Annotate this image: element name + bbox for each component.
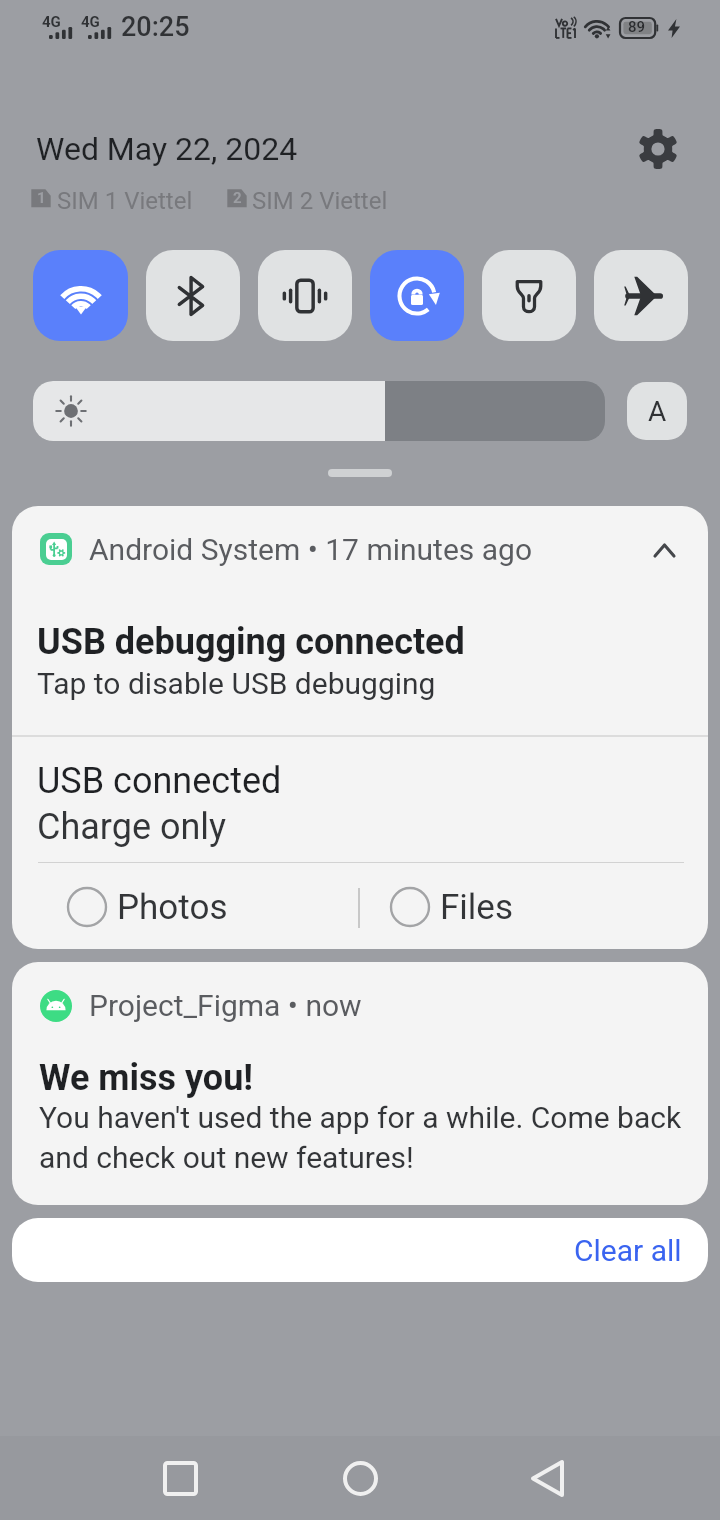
button[interactable]: Photos (65, 885, 228, 929)
button[interactable]: Wi-Fi (33, 250, 128, 341)
button[interactable]: Collapse notification (640, 526, 688, 574)
button[interactable]: Auto-rotate lock (370, 250, 464, 341)
staticText: A (648, 395, 667, 428)
staticText: 2 (233, 189, 242, 207)
staticText: You haven't used the app for a while. Co… (39, 1100, 682, 1175)
staticText: We miss you! (39, 1057, 254, 1099)
staticText: SIM 1 Viettel (57, 187, 193, 215)
staticText: SIM 2 Viettel (252, 187, 388, 215)
staticText: 20:25 (121, 11, 190, 43)
staticText: USB connected (37, 760, 282, 802)
staticText: Wed May 22, 2024 (36, 130, 298, 168)
button[interactable]: Brightness (33, 381, 605, 441)
staticText: Clear all (574, 1233, 682, 1268)
staticText: Project_Figma • now (89, 988, 362, 1023)
staticText: Files (440, 887, 513, 928)
button[interactable]: Flashlight (482, 250, 576, 341)
button[interactable]: Auto brightness (627, 382, 687, 440)
button[interactable]: Clear all (12, 1218, 708, 1282)
staticText: 4G (42, 13, 61, 31)
staticText: Tap to disable USB debugging (37, 666, 436, 701)
button[interactable]: Airplane mode (594, 250, 688, 341)
staticText: Android System • 17 minutes ago (89, 532, 533, 567)
staticText: Photos (117, 887, 228, 928)
button[interactable]: Settings (634, 125, 682, 173)
staticText: 4G (81, 13, 100, 31)
button[interactable]: Back (505, 1436, 589, 1520)
button[interactable]: Vibrate (258, 250, 352, 341)
staticText: 1 (37, 189, 46, 207)
staticText: USB debugging connected (37, 621, 465, 663)
staticText: 89 (628, 18, 646, 36)
button[interactable]: Recent apps (138, 1436, 222, 1520)
button[interactable]: Files (388, 885, 513, 929)
button[interactable]: Bluetooth (146, 250, 240, 341)
staticText: Charge only (37, 806, 227, 848)
button[interactable]: Home (318, 1436, 402, 1520)
